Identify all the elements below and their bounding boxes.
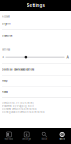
staticText: Help bbox=[2, 79, 7, 82]
staticText: A bbox=[2, 56, 3, 58]
button[interactable]: Text size bbox=[0, 51, 71, 63]
button[interactable]: Subscribe bbox=[0, 30, 71, 41]
staticText: Settings bbox=[26, 3, 44, 8]
button[interactable]: Buscar bbox=[35, 128, 53, 144]
button[interactable]: Ajustes bbox=[53, 128, 71, 144]
staticText: Settings bbox=[2, 48, 10, 51]
staticText: Subscribe bbox=[2, 34, 12, 37]
staticText: Buscar bbox=[41, 138, 47, 140]
button[interactable]: Descargas bbox=[18, 128, 36, 144]
staticText: Configuration version 1687918198 bbox=[2, 111, 45, 114]
button[interactable]: Help bbox=[0, 76, 71, 86]
staticText: Content version 1687918198 bbox=[2, 108, 37, 111]
staticText: Version 10.7.1 (9257979) bbox=[2, 102, 34, 105]
button[interactable]: Reproducir bbox=[0, 128, 18, 144]
staticText: Descargas bbox=[22, 138, 31, 140]
staticText: Reproducir bbox=[4, 138, 13, 140]
staticText: Sign in bbox=[2, 22, 10, 25]
staticText: Delete all downloaded editions bbox=[2, 68, 34, 71]
staticText: A bbox=[66, 55, 68, 59]
staticText: Powered by Pugpig Bolt bbox=[2, 105, 34, 108]
button[interactable]: About bbox=[0, 87, 71, 97]
button[interactable]: Delete all downloaded editions bbox=[0, 64, 71, 75]
button[interactable]: Sign in bbox=[0, 18, 71, 29]
staticText: About bbox=[2, 90, 8, 93]
staticText: Ajustes bbox=[59, 138, 65, 140]
staticText: Account bbox=[2, 15, 10, 18]
